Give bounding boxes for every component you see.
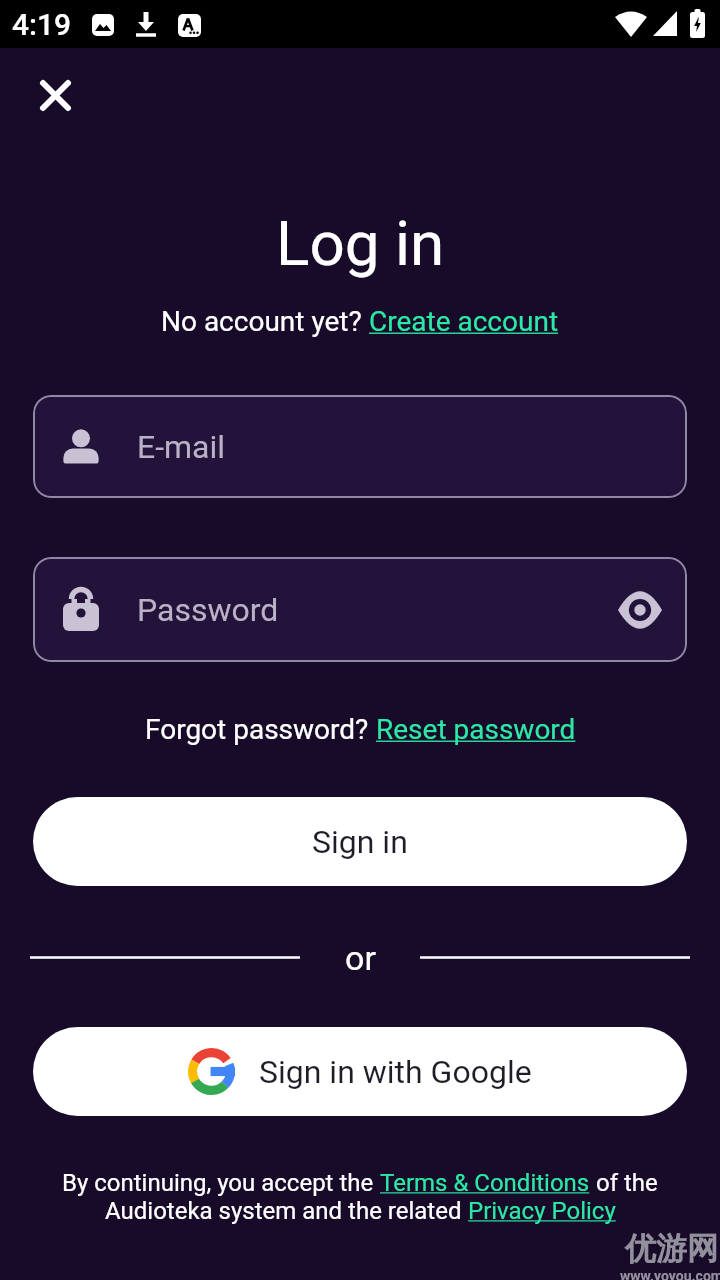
staticText: 4:19	[12, 7, 72, 42]
staticText: Sign in	[312, 823, 408, 861]
staticText: Forgot password?	[145, 713, 376, 746]
staticText: No account yet?	[161, 305, 369, 338]
staticText: Sign in with Google	[259, 1053, 532, 1091]
staticText: E-mail	[137, 428, 226, 466]
button[interactable]: E-mail	[33, 395, 687, 498]
staticText: Reset password	[376, 713, 576, 746]
staticText: Password	[137, 591, 279, 629]
staticText: of the	[590, 1169, 658, 1197]
staticText: Terms & Conditions	[380, 1169, 590, 1197]
staticText: 优游网	[625, 1229, 718, 1268]
button[interactable]: Password	[33, 557, 687, 662]
staticText: www.yoyou.com	[620, 1268, 720, 1280]
staticText: Privacy Policy	[468, 1197, 616, 1225]
button[interactable]: Create account	[369, 305, 559, 338]
button[interactable]: Sign in	[33, 797, 687, 886]
staticText: Audioteka system and the related	[105, 1197, 468, 1225]
button[interactable]: Privacy Policy	[468, 1197, 616, 1225]
button[interactable]	[31, 71, 79, 119]
staticText: By continuing, you accept the	[62, 1169, 380, 1197]
button[interactable]: Terms & Conditions	[380, 1169, 590, 1197]
staticText: Create account	[369, 305, 559, 338]
button[interactable]	[617, 587, 663, 633]
button[interactable]: Reset password	[376, 713, 576, 746]
staticText: or	[345, 938, 376, 978]
staticText: Log in	[276, 207, 445, 280]
button[interactable]: Sign in with Google	[33, 1027, 687, 1116]
